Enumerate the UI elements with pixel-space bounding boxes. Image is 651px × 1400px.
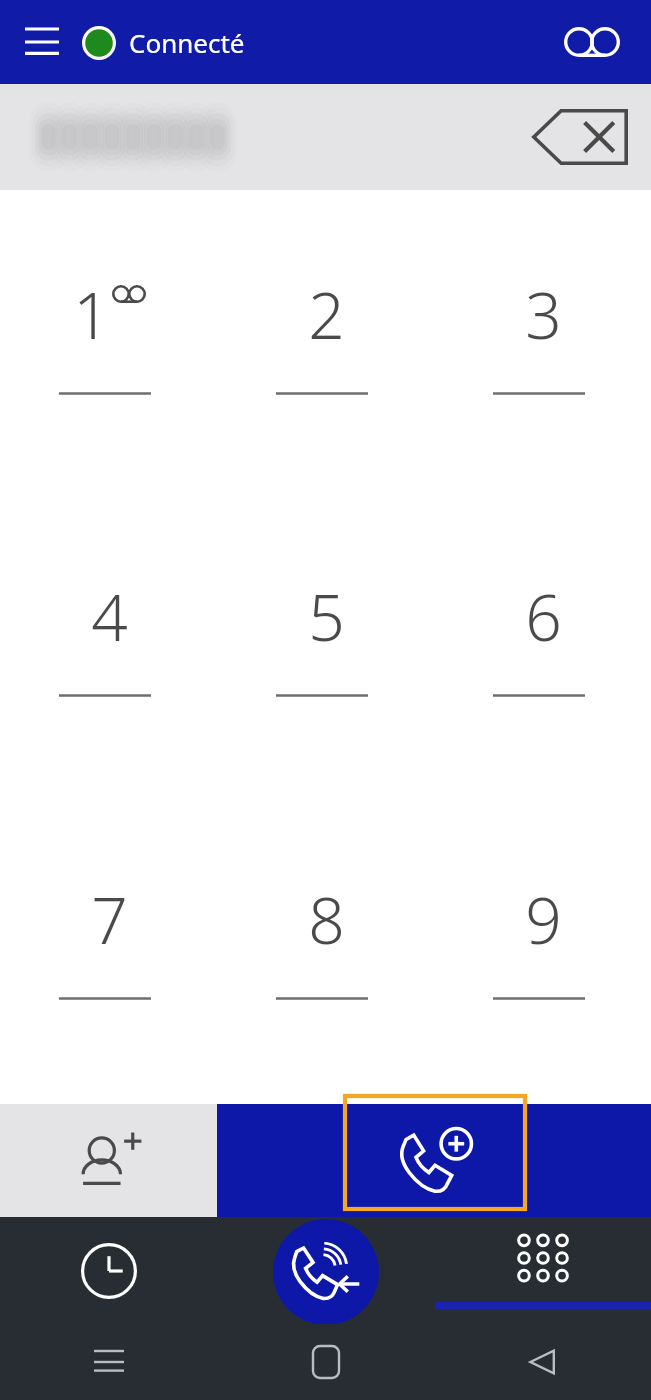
button[interactable]: 3	[434, 190, 651, 492]
staticText: 0	[296, 1179, 333, 1266]
button[interactable]: Backspace	[525, 100, 635, 174]
button[interactable]: 0	[217, 1097, 434, 1400]
staticText: #	[524, 1201, 562, 1280]
staticText: 2	[308, 271, 345, 358]
button[interactable]: 8	[217, 794, 434, 1097]
staticText: 8	[308, 876, 345, 963]
button[interactable]: Home	[217, 1324, 434, 1400]
button[interactable]: Menu	[14, 14, 70, 70]
staticText: 4	[91, 573, 128, 660]
button[interactable]: 5	[217, 492, 434, 794]
button[interactable]: Connecté	[82, 25, 245, 60]
staticText: 1	[73, 271, 110, 358]
button[interactable]: Incoming call	[273, 1219, 379, 1325]
button[interactable]: 1	[0, 190, 217, 492]
button[interactable]: *	[0, 1097, 217, 1400]
button[interactable]: 4	[0, 492, 217, 794]
staticText: *	[93, 1201, 125, 1280]
staticText: 6	[525, 573, 562, 660]
staticText: Connecté	[129, 25, 245, 60]
staticText: 7	[91, 876, 128, 963]
button[interactable]: Recent calls	[0, 1217, 217, 1324]
staticText: 3	[525, 271, 562, 358]
staticText: 9	[525, 876, 562, 963]
button[interactable]: 9	[434, 794, 651, 1097]
button[interactable]: Voicemail	[559, 9, 625, 75]
button[interactable]: 2	[217, 190, 434, 492]
button[interactable]: Back	[434, 1324, 651, 1400]
button[interactable]: #	[434, 1097, 651, 1400]
button[interactable]: 7	[0, 794, 217, 1097]
button[interactable]: Add contact	[0, 1104, 217, 1217]
button[interactable]: Keypad	[434, 1217, 651, 1324]
button[interactable]: Call	[217, 1104, 651, 1217]
staticText: 5	[308, 573, 345, 660]
button[interactable]: 6	[434, 492, 651, 794]
button[interactable]: Recents	[0, 1324, 217, 1400]
